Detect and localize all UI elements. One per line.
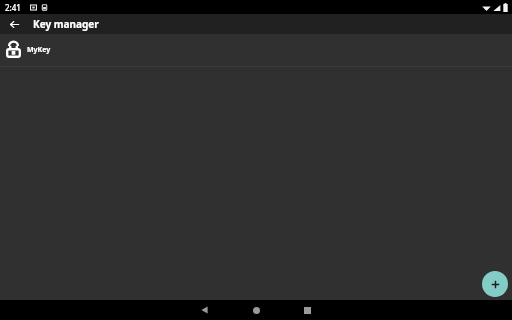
button[interactable]: Add key bbox=[482, 271, 508, 297]
button[interactable]: Back bbox=[192, 300, 216, 320]
button[interactable]: MyKey bbox=[0, 34, 512, 66]
button[interactable]: Recents bbox=[295, 300, 319, 320]
button[interactable]: Home bbox=[244, 300, 268, 320]
staticText: Key manager bbox=[33, 17, 99, 31]
staticText: MyKey bbox=[27, 45, 51, 55]
staticText: 2:41 bbox=[5, 2, 21, 13]
button[interactable]: Back bbox=[5, 15, 23, 33]
